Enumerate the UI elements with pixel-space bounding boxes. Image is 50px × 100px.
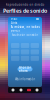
button[interactable]: Empezar ahora [17,67,32,71]
staticText: Perfiles de sonido [3,7,47,14]
staticText: Empezar ahora [19,66,31,73]
button[interactable]: Record [25,87,33,93]
button[interactable]: Rewind [9,87,17,93]
staticText: Tu música, en todas partes [10,25,39,32]
staticText: Reproduciendo en directo [5,3,44,6]
staticText: Escucha sin conexión [11,33,38,37]
staticText: 9:41 [11,17,18,21]
button[interactable]: Play [17,87,25,93]
staticText: Más información [14,77,35,81]
staticText: Atrás [11,21,17,25]
button[interactable]: Atrás [8,21,42,25]
button[interactable]: Next [33,87,41,93]
